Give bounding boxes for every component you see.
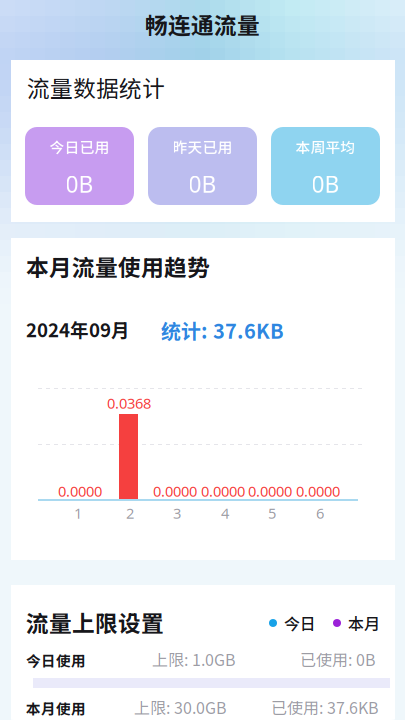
- button[interactable]: 昨天已用: [148, 127, 257, 205]
- staticText: 本月: [348, 611, 380, 635]
- staticText: 2024年09月: [26, 315, 130, 342]
- staticText: 6: [316, 503, 324, 523]
- staticText: 0B: [65, 169, 93, 199]
- staticText: 0.0000: [248, 481, 292, 501]
- staticText: 0B: [311, 169, 339, 199]
- staticText: 0.0000: [296, 481, 340, 501]
- staticText: 流量上限设置: [26, 606, 164, 638]
- staticText: 上限: 30.0GB: [134, 695, 227, 719]
- staticText: 0.0000: [58, 481, 102, 501]
- staticText: 今日使用: [26, 649, 86, 671]
- staticText: 昨天已用: [172, 136, 232, 157]
- staticText: 本月使用: [26, 697, 86, 719]
- staticText: 0.0000: [201, 481, 245, 501]
- staticText: 统计: 37.6KB: [161, 315, 284, 344]
- button[interactable]: 本周平均: [271, 127, 380, 205]
- staticText: 0B: [188, 169, 216, 199]
- staticText: 已使用: 37.6KB: [271, 695, 379, 719]
- staticText: 本月流量使用趋势: [26, 250, 210, 282]
- staticText: 流量数据统计: [27, 71, 165, 103]
- button[interactable]: 今日已用: [25, 127, 134, 205]
- staticText: 2: [126, 503, 134, 523]
- staticText: 3: [173, 503, 181, 523]
- staticText: 上限: 1.0GB: [152, 647, 236, 671]
- staticText: 已使用: 0B: [300, 647, 376, 671]
- staticText: 畅连通流量: [145, 8, 260, 40]
- staticText: 今日已用: [49, 136, 109, 157]
- staticText: 5: [268, 503, 276, 523]
- staticText: 0.0368: [107, 393, 151, 413]
- staticText: 4: [221, 503, 229, 523]
- staticText: 本周平均: [295, 136, 355, 157]
- staticText: 0.0000: [153, 481, 197, 501]
- staticText: 今日: [284, 611, 316, 635]
- staticText: 1: [74, 503, 82, 523]
